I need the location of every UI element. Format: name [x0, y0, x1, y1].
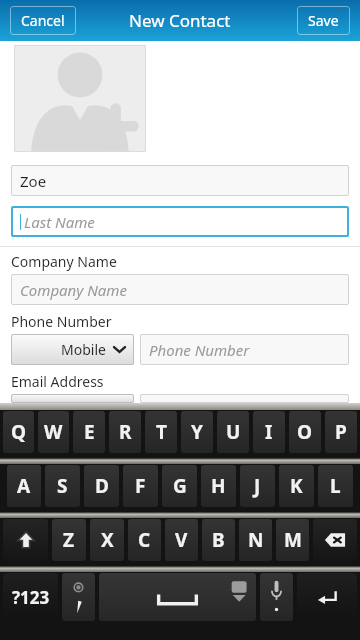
button[interactable]: O — [289, 411, 321, 453]
staticText: New Contact — [129, 9, 231, 32]
button[interactable]: G — [162, 465, 197, 507]
button[interactable]: I — [253, 411, 285, 453]
staticText: O — [297, 419, 313, 445]
button[interactable]: J — [240, 465, 275, 507]
button[interactable]: R — [109, 411, 141, 453]
staticText: Phone Number — [11, 312, 112, 331]
staticText: W — [44, 419, 63, 445]
staticText: J — [254, 473, 261, 499]
button[interactable]: L — [318, 465, 353, 507]
button[interactable]: Shift — [3, 519, 48, 561]
button[interactable]: T — [145, 411, 177, 453]
button[interactable]: ?123 — [3, 573, 58, 621]
staticText: R — [119, 419, 132, 445]
button[interactable]: U — [217, 411, 249, 453]
staticText: M — [284, 527, 302, 553]
staticText: P — [335, 419, 347, 445]
button[interactable]: Zoe — [11, 165, 349, 196]
button[interactable]: W — [38, 411, 69, 453]
staticText: Q — [11, 419, 27, 445]
button[interactable]: Email address field — [140, 394, 349, 403]
staticText: Y — [191, 419, 203, 445]
staticText: Phone Number — [149, 340, 250, 360]
staticText: Company Name — [20, 280, 127, 300]
staticText: C — [138, 527, 151, 553]
staticText: D — [95, 473, 109, 499]
button[interactable]: B — [202, 519, 235, 561]
staticText: H — [211, 473, 226, 499]
button[interactable]: D — [84, 465, 119, 507]
staticText: V — [175, 527, 188, 553]
staticText: ?123 — [12, 586, 50, 609]
staticText: B — [212, 527, 225, 553]
button[interactable]: Backspace — [313, 519, 357, 561]
staticText: S — [57, 473, 68, 499]
staticText: Z — [63, 527, 75, 553]
staticText: Mobile — [61, 340, 106, 359]
staticText: L — [330, 473, 341, 499]
button[interactable]: Q — [3, 411, 34, 453]
staticText: Last Name — [24, 212, 95, 232]
staticText: I — [265, 419, 273, 445]
button[interactable]: P — [325, 411, 357, 453]
staticText: G — [173, 473, 187, 499]
button[interactable]: Cancel — [10, 6, 76, 35]
button[interactable]: Period, voice input — [260, 573, 293, 621]
button[interactable]: Save — [297, 6, 350, 35]
button[interactable]: Mobile — [11, 334, 134, 365]
button[interactable]: M — [276, 519, 309, 561]
button[interactable]: Select type — [11, 394, 134, 403]
button[interactable]: Add contact photo — [14, 45, 146, 152]
staticText: F — [135, 473, 146, 499]
button[interactable]: K — [279, 465, 314, 507]
button[interactable]: X — [90, 519, 124, 561]
staticText: A — [17, 473, 31, 499]
button[interactable]: V — [165, 519, 198, 561]
button[interactable]: Space — [99, 573, 256, 621]
button[interactable]: Company Name — [11, 274, 349, 305]
button[interactable]: Y — [181, 411, 213, 453]
button[interactable]: S — [45, 465, 80, 507]
staticText: Email Address — [11, 372, 104, 391]
staticText: U — [226, 419, 241, 445]
staticText: X — [101, 527, 114, 553]
button[interactable]: Comma, change language — [62, 573, 95, 621]
staticText: Cancel — [21, 11, 65, 30]
button[interactable]: Z — [52, 519, 86, 561]
button[interactable]: Enter — [297, 573, 357, 621]
staticText: N — [248, 527, 264, 553]
staticText: K — [290, 473, 303, 499]
staticText: Zoe — [20, 171, 47, 191]
staticText: Save — [308, 11, 339, 30]
button[interactable]: N — [239, 519, 272, 561]
button[interactable]: E — [73, 411, 105, 453]
staticText: Company Name — [11, 252, 117, 271]
button[interactable]: Last Name — [11, 206, 349, 237]
button[interactable]: F — [123, 465, 158, 507]
button[interactable]: C — [128, 519, 161, 561]
staticText: T — [156, 419, 167, 445]
button[interactable]: A — [7, 465, 41, 507]
button[interactable]: Phone Number — [140, 334, 349, 365]
staticText: E — [84, 419, 95, 445]
button[interactable]: H — [201, 465, 236, 507]
